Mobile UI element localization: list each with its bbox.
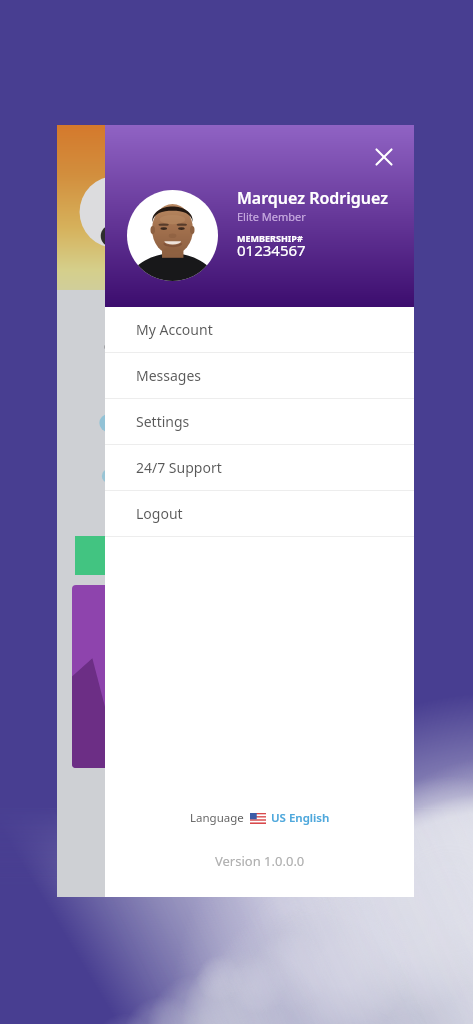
staticText: Version 1.0.0.0 xyxy=(215,852,305,870)
staticText: 24/7 Support xyxy=(136,458,222,477)
button[interactable]: Close xyxy=(368,141,400,173)
staticText: Language xyxy=(190,810,244,826)
button[interactable]: Logout xyxy=(105,491,414,537)
button[interactable]: Settings xyxy=(105,399,414,445)
staticText: Elite Member xyxy=(237,209,306,224)
button[interactable]: My Account xyxy=(105,307,414,353)
staticText: Settings xyxy=(136,412,190,431)
staticText: Messages xyxy=(136,366,202,385)
staticText: MEMBERSHIP# xyxy=(237,232,303,244)
staticText: Logout xyxy=(136,504,183,523)
staticText: Marquez Rodriguez xyxy=(237,187,388,209)
staticText: My Account xyxy=(136,320,213,339)
staticText: US English xyxy=(271,810,330,826)
button[interactable]: Language xyxy=(182,806,338,830)
staticText: 01234567 xyxy=(237,240,306,260)
button[interactable]: 24/7 Support xyxy=(105,445,414,491)
button[interactable]: Messages xyxy=(105,353,414,399)
